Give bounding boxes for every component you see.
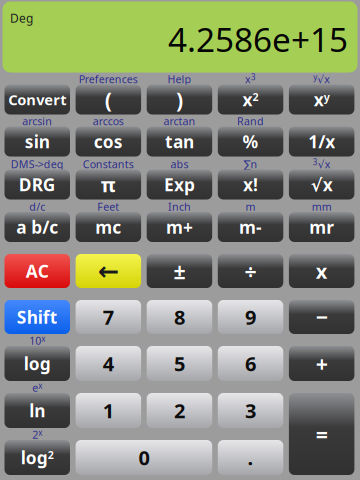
staticText: AC [26, 259, 49, 282]
staticText: 6 [245, 350, 256, 377]
button[interactable]: AC [4, 254, 70, 288]
button[interactable]: ± [147, 254, 212, 288]
staticText: x2 [242, 88, 258, 111]
staticText: 4 [103, 350, 114, 377]
staticText: Inch [168, 199, 191, 214]
button[interactable]: ← [76, 254, 141, 288]
button[interactable]: 2 [147, 393, 212, 428]
staticText: 9 [245, 304, 256, 330]
button[interactable]: mc [76, 212, 141, 242]
staticText: 0 [138, 444, 149, 471]
staticText: √x [311, 173, 333, 196]
staticText: arccos [93, 114, 124, 128]
button[interactable]: 8 [147, 300, 212, 334]
staticText: ∑n [243, 157, 257, 171]
button[interactable]: + [289, 346, 354, 381]
staticText: Deg [10, 10, 33, 26]
button[interactable]: 7 [76, 300, 141, 334]
staticText: log [24, 352, 51, 375]
button[interactable]: = [289, 393, 354, 475]
staticText: 3√x [313, 157, 331, 171]
staticText: DRG [19, 173, 56, 196]
staticText [107, 427, 110, 442]
staticText: 2 [174, 397, 185, 424]
button[interactable]: DRG [4, 169, 70, 199]
staticText: 4.2586e+15 [168, 17, 348, 61]
staticText: 7 [103, 304, 114, 330]
button[interactable]: m- [218, 212, 283, 242]
staticText: − [316, 303, 328, 331]
staticText: Exp [164, 173, 195, 196]
staticText: ← [98, 257, 119, 285]
staticText: . [247, 444, 253, 471]
button[interactable]: Exp [147, 169, 212, 199]
staticText: + [316, 349, 328, 378]
staticText: ) [176, 85, 183, 114]
button[interactable]: √x [289, 169, 354, 199]
staticText: ± [173, 257, 185, 285]
button[interactable]: . [218, 440, 283, 475]
staticText [320, 114, 323, 128]
button[interactable]: 5 [147, 346, 212, 381]
button[interactable]: 1/x [289, 126, 354, 156]
staticText: π [101, 171, 116, 198]
button[interactable]: 4 [76, 346, 141, 381]
button[interactable]: − [289, 300, 354, 334]
staticText: Shift [17, 305, 58, 328]
button[interactable]: ) [147, 84, 212, 114]
staticText [249, 380, 252, 395]
button[interactable]: 0 [76, 440, 212, 475]
button[interactable]: Convert [4, 84, 70, 114]
staticText [178, 333, 181, 348]
staticText: log2 [21, 446, 54, 469]
button[interactable]: tan [147, 126, 212, 156]
staticText: 10x [29, 333, 45, 348]
staticText: x3 [245, 72, 256, 86]
button[interactable]: 1 [76, 393, 141, 428]
button[interactable]: Shift [4, 300, 70, 334]
staticText: 2x [32, 427, 42, 442]
staticText: arctan [163, 114, 195, 128]
staticText: y√x [313, 72, 330, 86]
staticText: Rand [237, 114, 264, 128]
staticText: ( [105, 85, 112, 114]
button[interactable]: a b/c [4, 212, 70, 242]
button[interactable]: x2 [218, 84, 283, 114]
button[interactable]: ( [76, 84, 141, 114]
staticText: d/c [29, 199, 45, 214]
staticText: Preferences [79, 72, 138, 86]
button[interactable]: ÷ [218, 254, 283, 288]
button[interactable]: 3 [218, 393, 283, 428]
button[interactable]: % [218, 126, 283, 156]
staticText [107, 333, 110, 348]
button[interactable]: cos [76, 126, 141, 156]
staticText: 5 [174, 350, 185, 377]
button[interactable]: 6 [218, 346, 283, 381]
button[interactable]: mr [289, 212, 354, 242]
staticText: m+ [166, 215, 193, 238]
staticText: Convert [8, 90, 66, 109]
staticText: sin [25, 130, 50, 153]
button[interactable]: x [289, 254, 354, 288]
staticText: DMS->deg [11, 157, 64, 171]
staticText: = [316, 420, 328, 448]
staticText: mm [312, 199, 332, 214]
staticText: Help [167, 72, 191, 86]
button[interactable]: xy [289, 84, 354, 114]
staticText: 3 [245, 397, 256, 424]
staticText: Constants [83, 157, 134, 171]
button[interactable]: log [4, 346, 70, 381]
button[interactable]: x! [218, 169, 283, 199]
button[interactable]: ln [4, 393, 70, 428]
button[interactable]: log2 [4, 440, 70, 475]
staticText: % [242, 130, 258, 153]
staticText [178, 380, 181, 395]
button[interactable]: sin [4, 126, 70, 156]
staticText [249, 427, 252, 442]
button[interactable]: m+ [147, 212, 212, 242]
staticText: arcsin [22, 114, 52, 128]
button[interactable]: π [76, 169, 141, 199]
staticText: xy [314, 88, 330, 111]
staticText: cos [94, 130, 123, 153]
button[interactable]: 9 [218, 300, 283, 334]
